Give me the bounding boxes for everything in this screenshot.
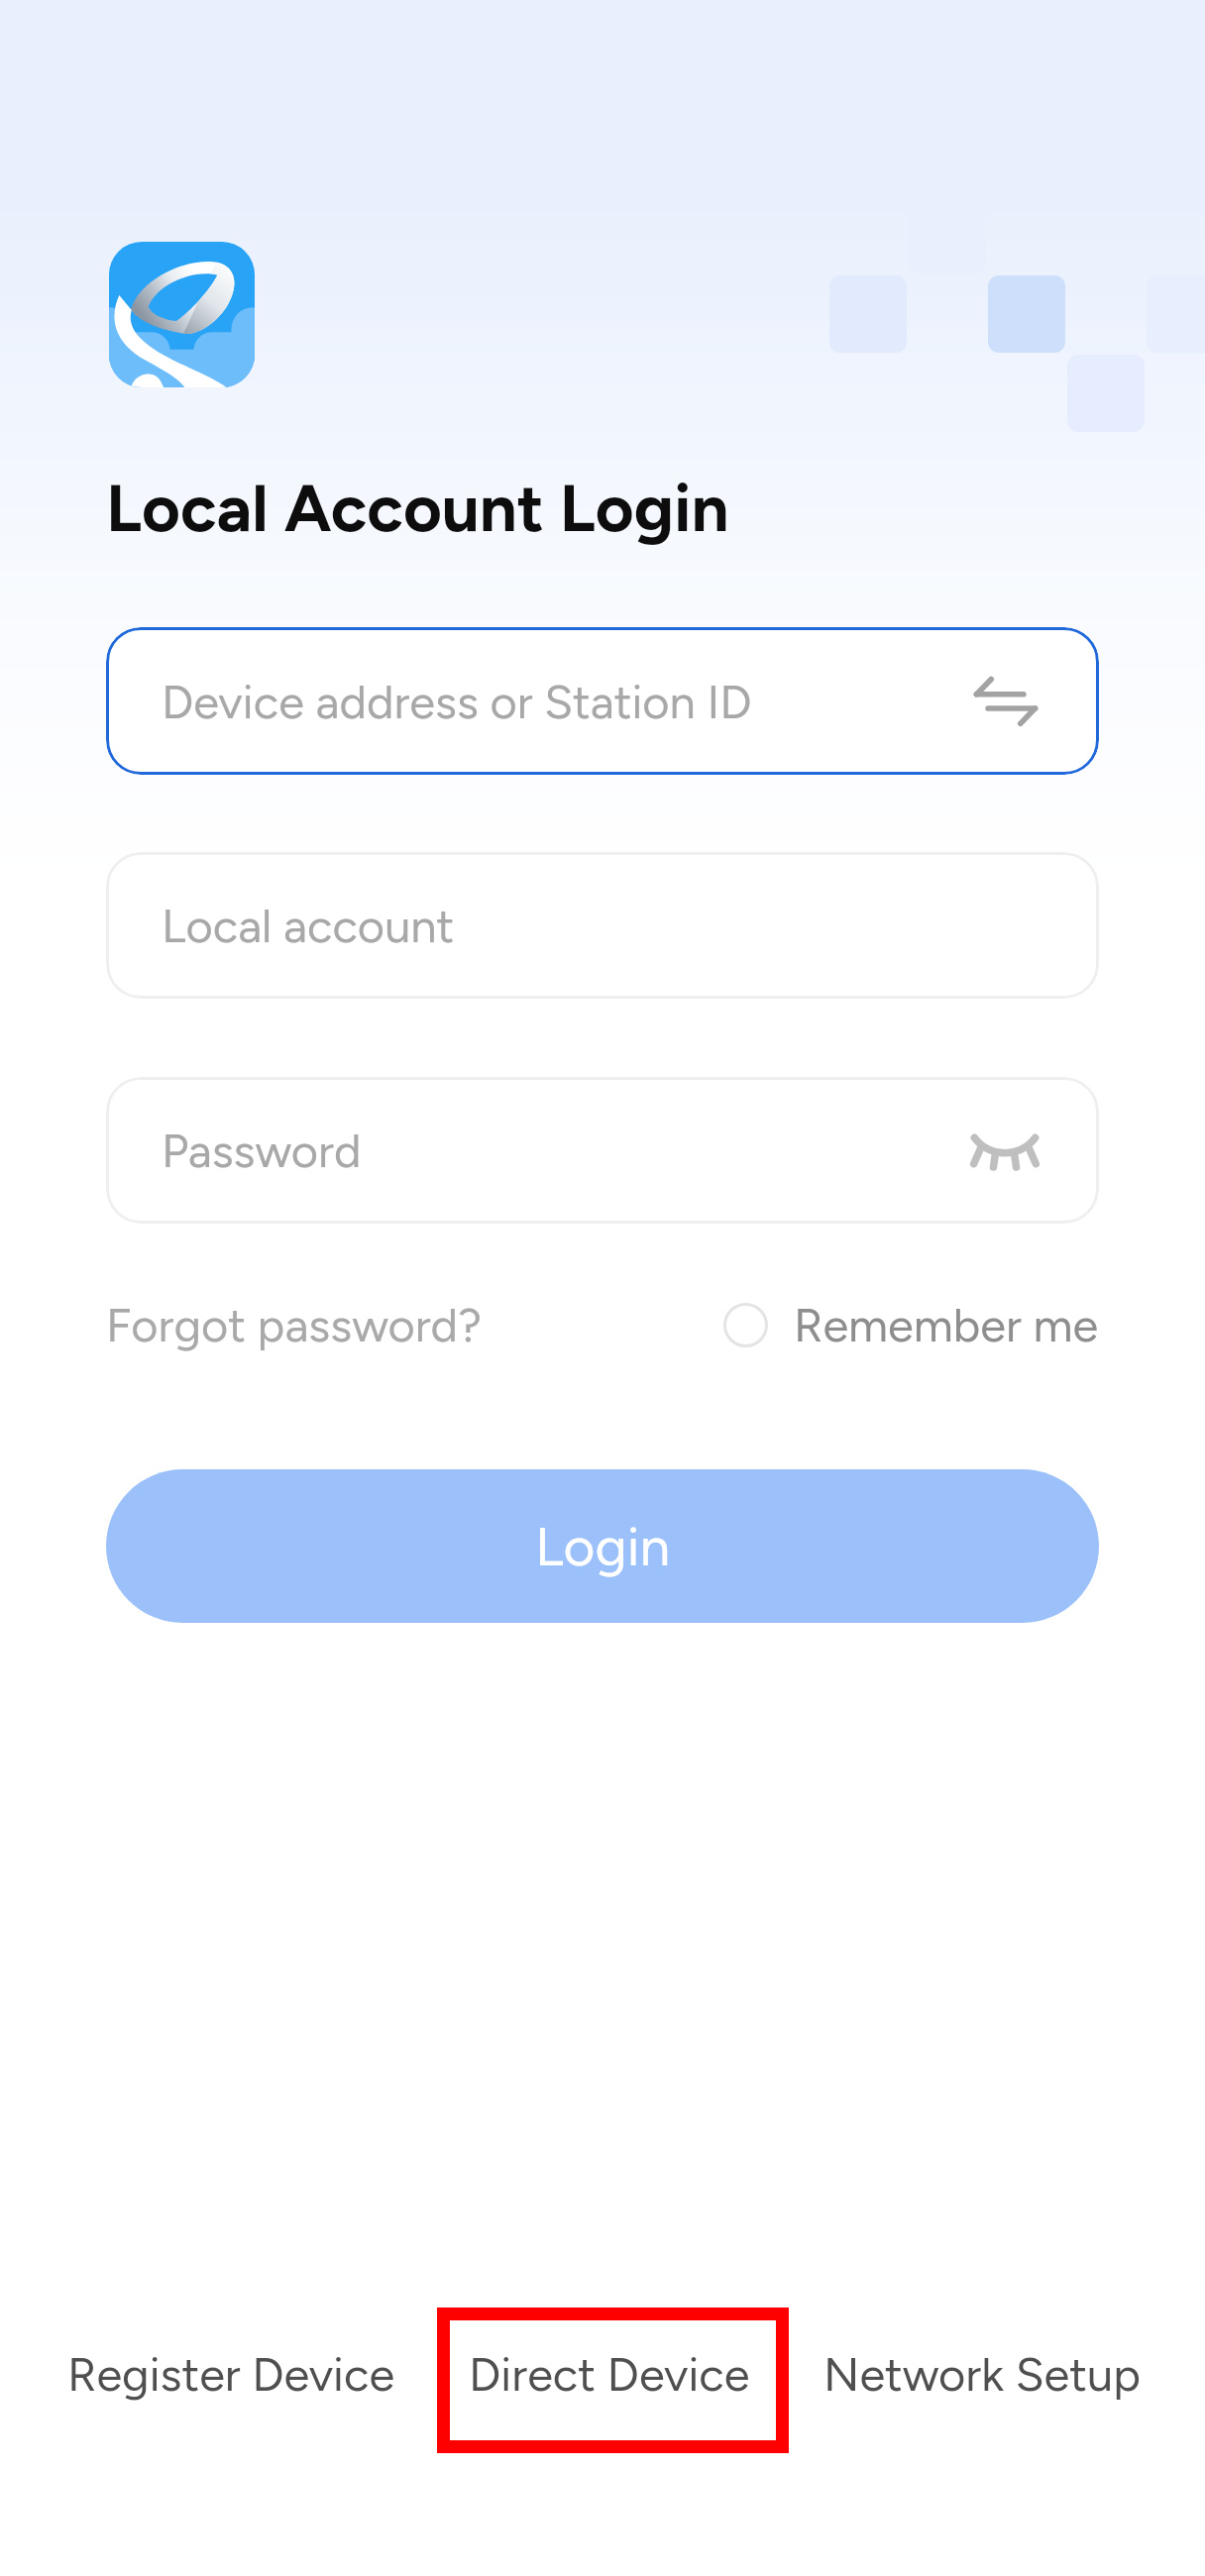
button[interactable]: Password (106, 1077, 1099, 1224)
button[interactable]: Remember me (710, 1283, 1113, 1366)
button[interactable]: Login (106, 1469, 1099, 1623)
staticText: Local account (162, 898, 455, 953)
other: App logo (109, 242, 255, 387)
button[interactable]: Forgot password? (92, 1283, 495, 1366)
staticText: Password (162, 1123, 362, 1178)
staticText: Network Setup (823, 2346, 1141, 2402)
other: Show password (972, 1134, 1038, 1167)
staticText: Device address or Station ID (162, 674, 752, 729)
button[interactable]: Network Setup (796, 2318, 1168, 2429)
staticText: Remember me (794, 1297, 1099, 1352)
staticText: Login (535, 1514, 671, 1579)
button[interactable]: Register Device (40, 2318, 423, 2429)
button[interactable]: Device address or Station ID (106, 627, 1099, 775)
staticText: Forgot password? (106, 1297, 482, 1352)
button[interactable]: Direct Device (441, 2318, 778, 2429)
staticText: Direct Device (469, 2346, 750, 2402)
staticText: Local Account Login (106, 468, 729, 547)
other: Switch device address input (974, 678, 1038, 725)
button[interactable]: Local account (106, 852, 1099, 999)
staticText: Register Device (67, 2346, 395, 2402)
